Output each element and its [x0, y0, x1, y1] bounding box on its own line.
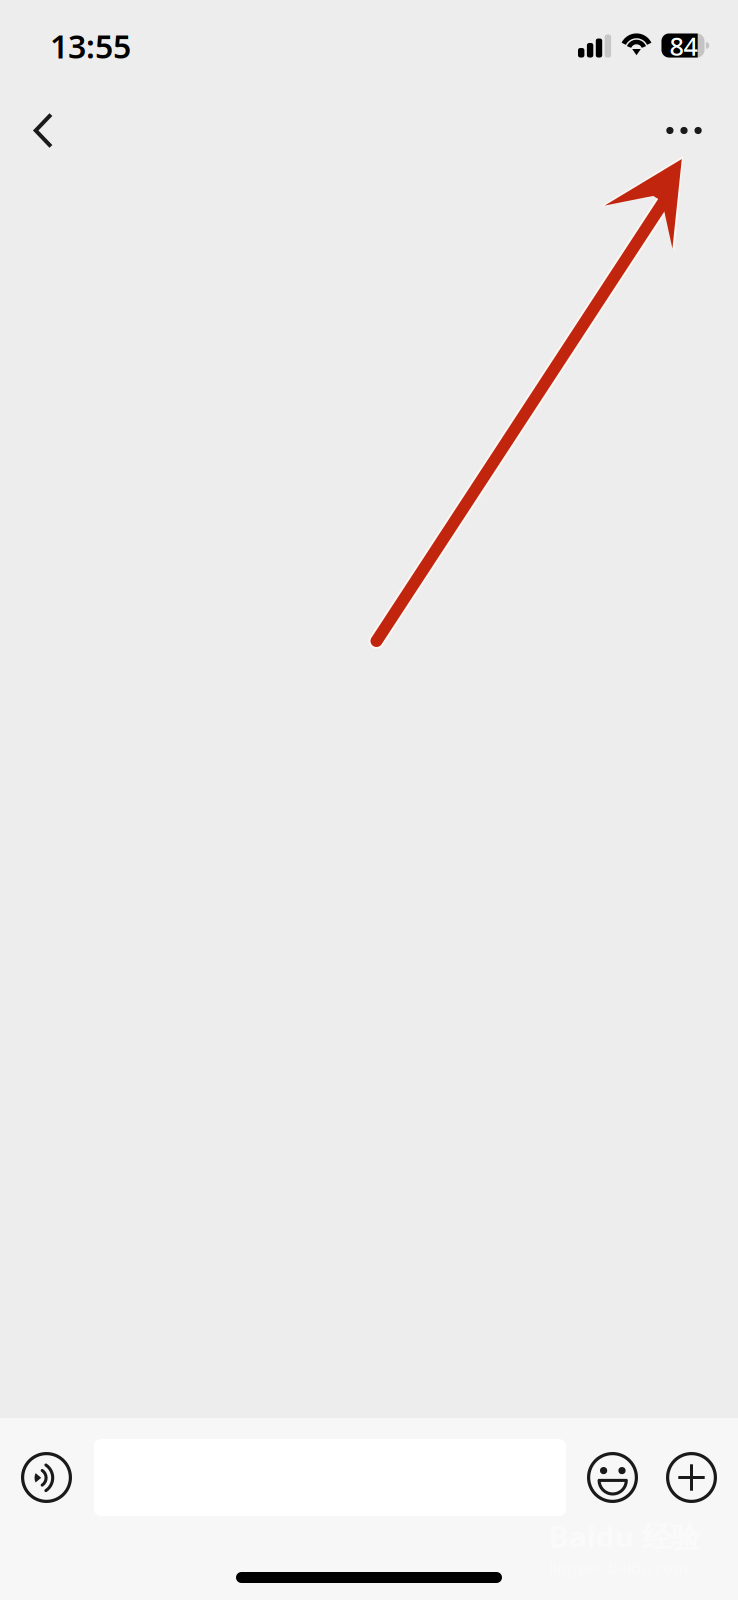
- staticText: 13:55: [50, 25, 131, 67]
- button[interactable]: More: [648, 92, 720, 169]
- button[interactable]: Emoji: [587, 1452, 638, 1503]
- button[interactable]: Back: [0, 92, 87, 169]
- button[interactable]: More options: [666, 1452, 717, 1503]
- staticText: 84: [669, 29, 697, 63]
- button[interactable]: Voice message: [21, 1452, 72, 1503]
